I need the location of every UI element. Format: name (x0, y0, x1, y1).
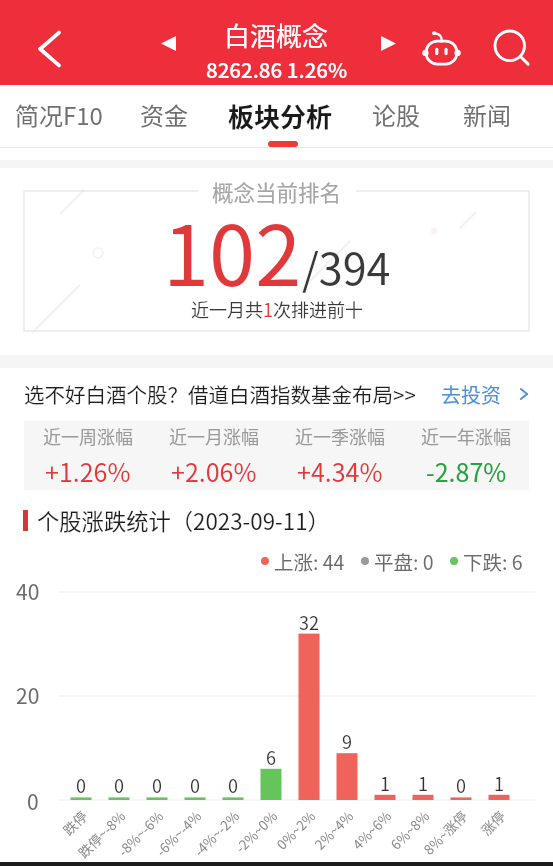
button[interactable]: Back (21, 25, 69, 73)
staticText: 近一年涨幅 (421, 423, 511, 449)
button[interactable]: Search (482, 20, 532, 70)
staticText: 0 (76, 772, 86, 798)
staticText: 近一季涨幅 (295, 423, 385, 449)
staticText: 6%~8% (385, 806, 433, 854)
staticText: 简况F10 (15, 97, 103, 132)
staticText: 涨停 (476, 806, 509, 839)
staticText: 概念当前排名 (212, 176, 342, 207)
staticText: 上涨: 44 (274, 547, 345, 575)
staticText: 8%~涨停 (418, 806, 471, 859)
staticText: 2%~4% (309, 806, 357, 854)
staticText: 0 (190, 772, 200, 798)
staticText: 去投资 (441, 380, 501, 409)
staticText: 个股涨跌统计（2023-09-11） (37, 504, 330, 536)
staticText: -6%~-4% (151, 806, 205, 860)
staticText: 8262.86 1.26% (206, 54, 348, 84)
button[interactable]: 近一季涨幅 (277, 421, 403, 490)
button[interactable]: 板块分析 (214, 85, 347, 147)
button[interactable]: Next sector (368, 23, 408, 63)
staticText: 0 (27, 786, 39, 816)
staticText: 0 (228, 772, 238, 798)
staticText: 6 (266, 744, 276, 770)
staticText: 0 (152, 772, 162, 798)
button[interactable]: Previous sector (148, 23, 188, 63)
staticText: +1.26% (45, 453, 131, 489)
staticText: 次排进前十 (273, 296, 363, 322)
staticText: 论股 (372, 97, 420, 132)
staticText: 0%~2% (271, 806, 319, 854)
button[interactable]: 近一月涨幅 (151, 421, 277, 490)
button[interactable]: 论股 (358, 85, 434, 147)
button[interactable]: 简况F10 (1, 85, 117, 147)
staticText: 近一周涨幅 (43, 423, 133, 449)
staticText: 0 (114, 772, 124, 798)
staticText: 32 (299, 609, 319, 635)
staticText: 近一月共 (191, 296, 263, 322)
staticText: 1 (494, 770, 504, 796)
staticText: -4%~-2% (189, 806, 243, 860)
staticText: 下跌: 6 (463, 547, 523, 575)
staticText: 9 (342, 728, 352, 754)
staticText: 1 (380, 770, 390, 796)
button[interactable]: 新闻 (449, 85, 525, 147)
staticText: 资金 (140, 97, 188, 132)
button[interactable]: AI assistant (418, 24, 464, 70)
button[interactable]: 近一年涨幅 (403, 421, 529, 490)
staticText: 平盘: 0 (374, 547, 434, 575)
staticText: 20 (16, 680, 40, 710)
staticText: 跌停 (58, 806, 91, 839)
staticText: -2.87% (426, 453, 507, 489)
staticText: 102 (163, 190, 302, 310)
staticText: 40 (16, 576, 40, 606)
staticText: 选不好白酒个股？借道白酒指数基金布局>> (24, 379, 416, 409)
button[interactable]: 选不好白酒个股？借道白酒指数基金布局>> (0, 368, 553, 420)
staticText: 板块分析 (228, 97, 333, 135)
staticText: -2%~0% (229, 806, 281, 858)
staticText: 4%~6% (347, 806, 395, 854)
staticText: 1 (263, 296, 273, 322)
staticText: 1 (418, 770, 428, 796)
staticText: 0 (456, 772, 466, 798)
staticText: +4.34% (297, 453, 383, 489)
staticText: +2.06% (171, 453, 257, 489)
staticText: 新闻 (463, 97, 511, 132)
button[interactable]: 近一周涨幅 (24, 421, 151, 490)
button[interactable]: 资金 (126, 85, 202, 147)
staticText: -8%~-6% (113, 806, 167, 860)
staticText: /394 (302, 235, 391, 297)
staticText: 近一月涨幅 (169, 423, 259, 449)
staticText: 跌停~-8% (73, 806, 129, 863)
staticText: 白酒概念 (224, 16, 329, 54)
